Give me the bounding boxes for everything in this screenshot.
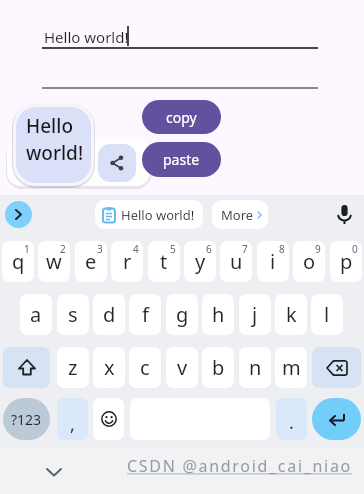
staticText: ?123 [11, 410, 42, 429]
button[interactable]: , [57, 398, 88, 440]
button[interactable]: q [2, 241, 34, 282]
button[interactable]: l [311, 294, 343, 335]
staticText: t [160, 248, 168, 275]
button[interactable]: b [202, 347, 234, 388]
button[interactable]: i [257, 241, 289, 282]
staticText: Hello world! [121, 206, 195, 224]
button[interactable]: z [57, 347, 89, 388]
staticText: u [230, 248, 243, 275]
button[interactable]: u [220, 241, 252, 282]
staticText: h [212, 301, 225, 328]
button[interactable]: . [276, 398, 307, 440]
button[interactable] [93, 398, 124, 440]
staticText: m [282, 354, 301, 381]
staticText: o [303, 248, 316, 275]
button[interactable] [337, 205, 352, 225]
button[interactable] [312, 398, 361, 440]
button[interactable] [3, 347, 50, 388]
staticText: paste [163, 150, 200, 169]
button[interactable] [5, 201, 32, 228]
staticText: , [70, 412, 75, 437]
staticText: n [249, 354, 262, 381]
button[interactable]: k [275, 294, 307, 335]
button[interactable]: o [293, 241, 325, 282]
staticText: x [104, 354, 115, 381]
staticText: f [142, 301, 149, 328]
staticText: Hello [26, 113, 73, 139]
button[interactable]: m [275, 347, 307, 388]
button[interactable]: f [129, 294, 161, 335]
staticText: 5 [170, 242, 176, 256]
button[interactable]: r [111, 241, 143, 282]
staticText: e [85, 248, 97, 275]
button[interactable]: g [166, 294, 198, 335]
staticText: j [252, 301, 258, 328]
staticText: More [221, 206, 254, 224]
staticText: w [46, 248, 62, 275]
button[interactable] [46, 468, 62, 477]
staticText: 3 [97, 242, 103, 256]
button[interactable]: w [38, 241, 70, 282]
button[interactable]: v [166, 347, 198, 388]
button[interactable]: h [202, 294, 234, 335]
button[interactable]: p [330, 241, 362, 282]
button[interactable]: copy [142, 100, 221, 134]
staticText: . [289, 410, 294, 435]
staticText: 4 [133, 242, 139, 256]
staticText: copy [166, 108, 197, 127]
button[interactable]: d [93, 294, 125, 335]
staticText: 8 [279, 242, 285, 256]
button[interactable]: c [129, 347, 161, 388]
staticText: 9 [315, 242, 321, 256]
staticText: d [103, 301, 116, 328]
staticText: p [340, 248, 353, 275]
staticText: world! [26, 140, 84, 166]
staticText: g [176, 301, 189, 328]
button[interactable] [40, 56, 320, 90]
staticText: s [68, 301, 78, 328]
button[interactable]: j [239, 294, 271, 335]
staticText: 2 [60, 242, 66, 256]
staticText: 0 [352, 242, 358, 256]
button[interactable]: ?123 [3, 398, 50, 440]
staticText: l [324, 301, 330, 328]
button[interactable]: Hello world! [95, 200, 203, 229]
staticText: r [123, 248, 132, 275]
button[interactable] [312, 347, 361, 388]
button[interactable]: More [212, 200, 268, 229]
button[interactable]: paste [142, 142, 221, 177]
button[interactable]: t [148, 241, 180, 282]
button[interactable] [40, 12, 320, 50]
staticText: 6 [206, 242, 212, 256]
button[interactable]: e [75, 241, 107, 282]
staticText: z [68, 354, 78, 381]
staticText: Hello world! [44, 27, 129, 47]
staticText: v [177, 354, 188, 381]
button[interactable]: y [184, 241, 216, 282]
staticText: a [30, 301, 42, 328]
staticText: CSDN @android_cai_niao [127, 455, 352, 477]
staticText: 1 [24, 242, 30, 256]
staticText: q [12, 248, 25, 275]
staticText: 7 [242, 242, 248, 256]
staticText: b [212, 354, 225, 381]
button[interactable]: s [57, 294, 89, 335]
staticText: i [270, 248, 276, 275]
staticText: k [286, 301, 297, 328]
button[interactable]: x [93, 347, 125, 388]
button[interactable] [98, 144, 136, 182]
staticText: c [140, 354, 150, 381]
button[interactable]: a [20, 294, 52, 335]
button[interactable]: n [239, 347, 271, 388]
staticText: y [195, 248, 206, 275]
